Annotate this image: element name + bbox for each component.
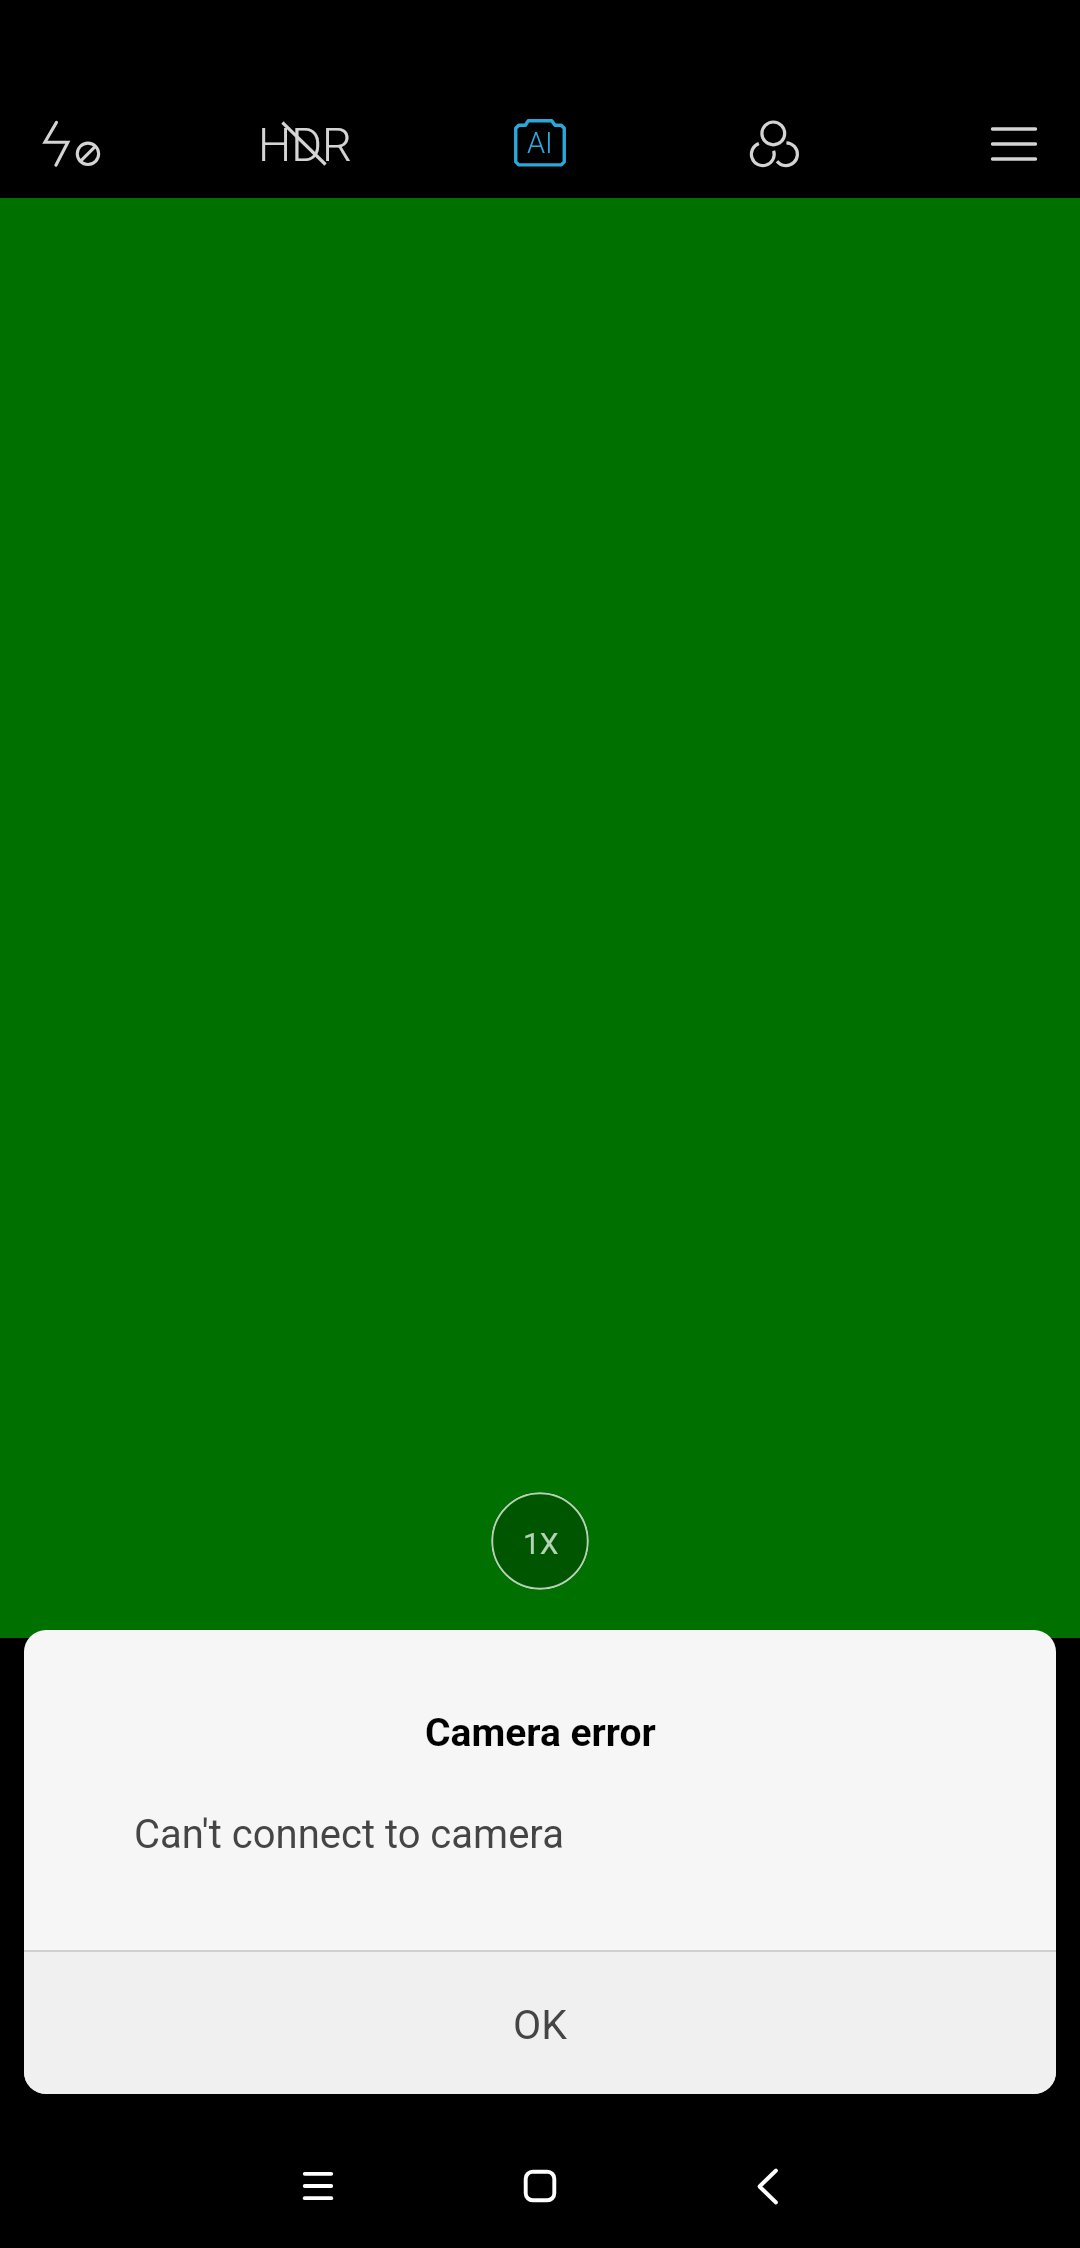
staticText: Can't connect to camera [134, 1811, 564, 1858]
button[interactable]: HDR off [233, 72, 377, 216]
button[interactable]: OK [24, 1952, 1056, 2094]
staticText: Camera error [425, 1710, 656, 1756]
staticText: 1X [523, 1526, 559, 1561]
staticText: OK [513, 2001, 567, 2049]
button[interactable]: Back [713, 2132, 821, 2240]
staticText: HDR [258, 117, 352, 172]
button[interactable]: Colour filters [702, 72, 846, 216]
button[interactable]: Menu [942, 72, 1080, 216]
button[interactable]: Home [486, 2132, 594, 2240]
button[interactable]: Flash off [0, 72, 142, 216]
staticText: AI [527, 126, 553, 160]
button[interactable]: AI scene detection [468, 72, 612, 216]
button[interactable]: Zoom 1X [491, 1492, 589, 1590]
button[interactable]: Recents [264, 2132, 372, 2240]
